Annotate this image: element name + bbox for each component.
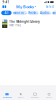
button[interactable]: Want to Read [13, 11, 27, 15]
staticText: 9:41 [2, 0, 9, 4]
button[interactable]: Search [42, 87, 56, 98]
button[interactable]: Finished [28, 11, 38, 15]
staticText: Select [46, 5, 54, 8]
staticText: Samples [52, 11, 56, 15]
button[interactable]: Reading Now [0, 87, 14, 98]
staticText: Want to Read [13, 11, 27, 15]
button[interactable]: The Midnight Library [0, 17, 56, 28]
button[interactable]: Select [46, 4, 54, 9]
staticText: Book Store [31, 96, 39, 98]
button[interactable]: Samples [52, 11, 56, 15]
button[interactable]: Library [14, 87, 28, 98]
staticText: Library [18, 96, 24, 98]
staticText: Search [46, 96, 52, 98]
staticText: Matt Haig [9, 23, 21, 27]
staticText: Audiobooks [40, 11, 51, 15]
button[interactable]: All [1, 11, 12, 15]
staticText: Reading Now [2, 96, 11, 98]
staticText: The Midnight Library [9, 20, 39, 23]
staticText: All [4, 11, 8, 15]
button[interactable]: Audiobooks [40, 11, 51, 15]
button[interactable]: Collections [2, 4, 6, 9]
staticText: My Books [16, 4, 34, 9]
staticText: Finished [28, 11, 38, 15]
button[interactable]: My Books [16, 4, 36, 9]
button[interactable]: Book Store [28, 87, 42, 98]
